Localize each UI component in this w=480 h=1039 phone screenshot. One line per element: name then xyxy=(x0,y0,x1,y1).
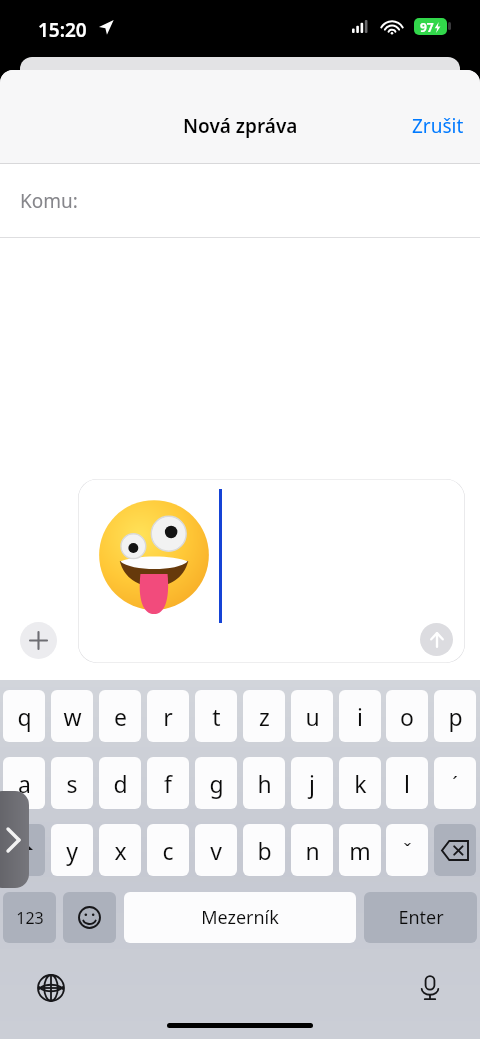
button[interactable]: ˇ xyxy=(386,824,428,876)
staticText: z xyxy=(259,701,270,732)
button[interactable]: e xyxy=(99,690,141,742)
button[interactable]: 123 xyxy=(3,892,56,943)
staticText: o xyxy=(400,701,414,732)
button[interactable]: r xyxy=(147,690,189,742)
staticText: h xyxy=(257,768,272,799)
staticText: s xyxy=(66,768,78,799)
button[interactable]: Send xyxy=(420,623,453,656)
staticText: f xyxy=(164,768,172,799)
staticText: r xyxy=(163,701,173,732)
staticText: i xyxy=(357,701,363,732)
staticText: w xyxy=(63,701,82,732)
staticText: ´ xyxy=(452,770,458,797)
button[interactable]: s xyxy=(51,757,93,809)
staticText: 123 xyxy=(16,907,44,929)
button[interactable]: ´ xyxy=(434,757,476,809)
button[interactable]: w xyxy=(51,690,93,742)
staticText: l xyxy=(404,768,410,799)
staticText: 97 xyxy=(420,19,434,35)
button[interactable]: t xyxy=(195,690,237,742)
staticText: x xyxy=(114,835,127,866)
button[interactable]: Mezerník xyxy=(124,892,356,943)
button[interactable]: Change keyboard xyxy=(34,971,68,1005)
button[interactable]: z xyxy=(243,690,285,742)
button[interactable]: u xyxy=(291,690,333,742)
staticText: j xyxy=(309,768,315,799)
button[interactable]: g xyxy=(195,757,237,809)
button[interactable]: f xyxy=(147,757,189,809)
button[interactable]: j xyxy=(291,757,333,809)
staticText: p xyxy=(448,701,463,732)
staticText: Mezerník xyxy=(201,905,279,930)
staticText: t xyxy=(212,701,221,732)
button[interactable]: m xyxy=(339,824,381,876)
staticText: Nová zpráva xyxy=(183,113,298,139)
button[interactable]: o xyxy=(386,690,428,742)
button[interactable]: Add attachment xyxy=(20,622,57,659)
staticText: v xyxy=(210,835,222,866)
staticText: g xyxy=(209,768,224,799)
button[interactable]: k xyxy=(339,757,381,809)
staticText: ˇ xyxy=(403,837,412,864)
button[interactable]: n xyxy=(291,824,333,876)
button[interactable] xyxy=(63,892,116,943)
staticText: Komu: xyxy=(20,188,78,214)
button[interactable]: Expand keyboard xyxy=(0,791,29,888)
staticText: a xyxy=(18,768,31,799)
button[interactable] xyxy=(3,824,45,876)
button[interactable]: c xyxy=(147,824,189,876)
button[interactable] xyxy=(434,824,476,876)
button[interactable]: v xyxy=(195,824,237,876)
button[interactable]: y xyxy=(51,824,93,876)
staticText: y xyxy=(66,835,78,866)
staticText: b xyxy=(257,835,272,866)
button[interactable]: a xyxy=(3,757,45,809)
staticText: k xyxy=(354,768,367,799)
staticText: e xyxy=(114,701,127,732)
button[interactable]: x xyxy=(99,824,141,876)
staticText: d xyxy=(113,768,128,799)
staticText: q xyxy=(17,701,32,732)
button[interactable]: Zrušit xyxy=(412,113,464,139)
staticText: u xyxy=(305,701,320,732)
button[interactable]: d xyxy=(99,757,141,809)
button[interactable]: l xyxy=(386,757,428,809)
staticText: c xyxy=(162,835,174,866)
button[interactable]: q xyxy=(3,690,45,742)
button[interactable]: Enter xyxy=(364,892,477,943)
staticText: Zrušit xyxy=(412,113,464,139)
staticText: n xyxy=(305,835,320,866)
button[interactable]: i xyxy=(339,690,381,742)
button[interactable]: Komu: xyxy=(0,164,480,237)
button[interactable]: Send xyxy=(78,479,465,663)
staticText: 15:20 xyxy=(38,17,87,43)
button[interactable]: b xyxy=(243,824,285,876)
button[interactable]: h xyxy=(243,757,285,809)
staticText: m xyxy=(349,835,371,866)
staticText: Enter xyxy=(398,905,444,930)
button[interactable]: Dictate xyxy=(413,971,447,1005)
button[interactable]: p xyxy=(434,690,476,742)
